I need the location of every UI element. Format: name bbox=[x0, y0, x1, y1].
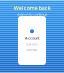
staticText: sign in to continue bbox=[17, 12, 47, 17]
staticText: Account bbox=[25, 35, 39, 41]
staticText: Welcome back bbox=[13, 4, 50, 12]
staticText: row one bbox=[26, 43, 38, 46]
staticText: row two bbox=[26, 48, 37, 52]
